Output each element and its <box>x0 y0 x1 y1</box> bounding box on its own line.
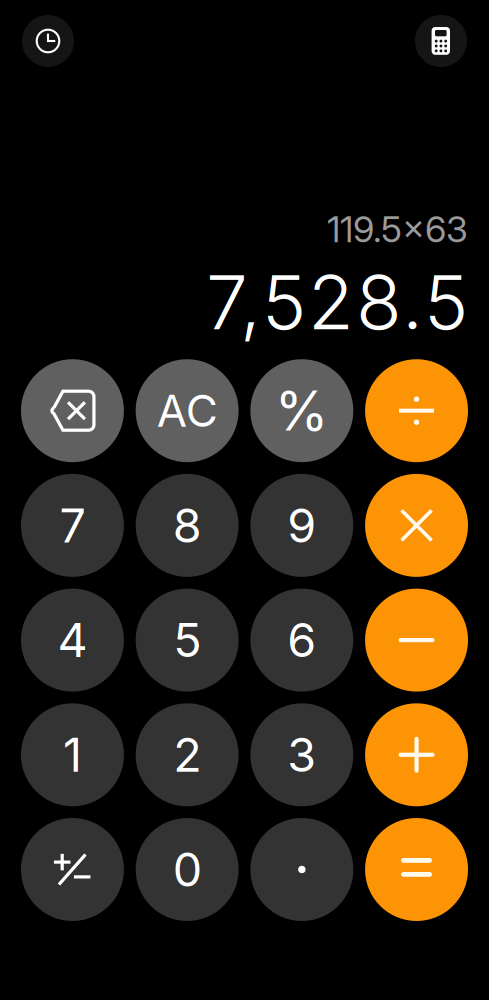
button[interactable]: Equals <box>365 818 468 921</box>
staticText: 3 <box>287 727 316 783</box>
button[interactable]: 4 <box>21 589 124 692</box>
button[interactable]: 7 <box>21 474 124 577</box>
staticText: 0 <box>173 841 202 898</box>
button[interactable]: 0 <box>136 818 239 921</box>
button[interactable]: 3 <box>250 703 353 806</box>
button[interactable]: % <box>250 359 353 462</box>
button[interactable]: Multiply <box>365 474 468 577</box>
button[interactable]: 8 <box>136 474 239 577</box>
staticText: 6 <box>287 612 316 668</box>
button[interactable]: Delete <box>21 359 124 462</box>
staticText: 1 <box>63 727 82 783</box>
button[interactable]: 2 <box>136 703 239 806</box>
button[interactable]: 9 <box>250 474 353 577</box>
staticText: 119.5×63 <box>327 207 468 251</box>
button[interactable]: History <box>22 15 74 67</box>
button[interactable]: Subtract <box>365 589 468 692</box>
button[interactable]: Divide <box>365 359 468 462</box>
staticText: 7,528.5 <box>206 257 468 347</box>
button[interactable]: Calculator keypad <box>415 15 467 67</box>
staticText: 4 <box>57 612 87 668</box>
staticText: % <box>275 378 329 444</box>
staticText: 2 <box>173 727 201 783</box>
staticText: 9 <box>287 497 316 554</box>
button[interactable]: 5 <box>136 589 239 692</box>
button[interactable]: Toggle sign <box>21 818 124 921</box>
staticText: 7 <box>59 497 85 554</box>
staticText: AC <box>157 384 218 437</box>
button[interactable]: 1 <box>21 703 124 806</box>
button[interactable]: 6 <box>250 589 353 692</box>
staticText: 5 <box>173 612 201 668</box>
button[interactable]: AC <box>136 359 239 462</box>
button[interactable]: Add <box>365 703 468 806</box>
button[interactable]: Decimal point <box>250 818 353 921</box>
staticText: 8 <box>173 497 202 554</box>
